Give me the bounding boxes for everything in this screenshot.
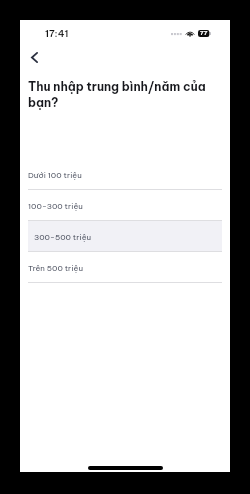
button[interactable]: 300-500 triệu: [28, 221, 222, 252]
staticText: 100-300 triệu: [28, 201, 83, 211]
staticText: Trên 500 triệu: [28, 263, 83, 273]
staticText: 17:41: [45, 27, 69, 39]
button[interactable]: Dưới 100 triệu: [28, 159, 222, 190]
button[interactable]: Back: [22, 44, 46, 70]
staticText: 77: [200, 29, 208, 37]
button[interactable]: Trên 500 triệu: [28, 252, 222, 283]
staticText: 300-500 triệu: [34, 232, 92, 242]
staticText: Dưới 100 triệu: [28, 170, 82, 180]
button[interactable]: 100-300 triệu: [28, 190, 222, 221]
staticText: Thu nhập trung bình/năm của bạn?: [28, 79, 216, 110]
